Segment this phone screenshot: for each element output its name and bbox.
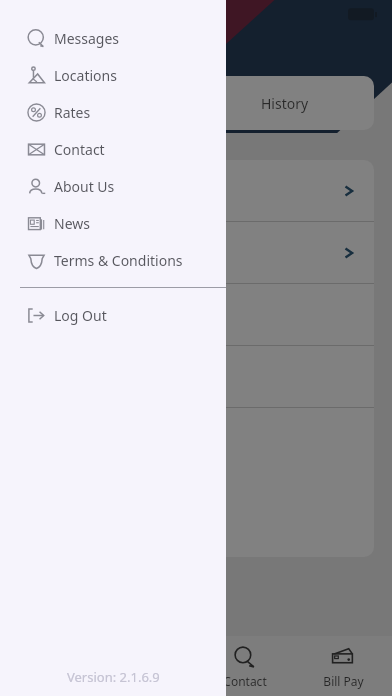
staticText: News — [54, 214, 90, 233]
staticText: History — [261, 94, 309, 113]
staticText: Locations — [54, 66, 117, 85]
staticText: Rates — [54, 103, 91, 122]
button[interactable]: Home — [0, 636, 98, 696]
staticText: About Us — [54, 177, 115, 196]
staticText: Bill Pay — [323, 673, 364, 689]
button[interactable]: Messages — [0, 20, 226, 57]
staticText: Log Out — [54, 306, 107, 325]
staticText: Scheduled — [73, 94, 142, 113]
button[interactable] — [18, 346, 374, 407]
button[interactable]: Contact — [196, 636, 294, 696]
button[interactable]: Contact — [0, 131, 226, 168]
button[interactable]: About Us — [0, 168, 226, 205]
button[interactable] — [18, 160, 374, 221]
button[interactable] — [18, 284, 374, 345]
button[interactable]: News — [0, 205, 226, 242]
button[interactable] — [18, 222, 374, 283]
staticText: Messages — [54, 29, 120, 48]
button[interactable]: Terms & Conditions — [0, 242, 226, 279]
button[interactable]: Bill Pay — [294, 636, 392, 696]
button[interactable]: Log Out — [0, 297, 226, 334]
button[interactable]: Accounts — [98, 636, 196, 696]
staticText: Accounts — [121, 673, 173, 689]
button[interactable]: Scheduled — [18, 76, 374, 130]
button[interactable]: Locations — [0, 57, 226, 94]
button[interactable]: Rates — [0, 94, 226, 131]
staticText: Version: 2.1.6.9 — [67, 668, 160, 686]
staticText: Contact — [223, 673, 267, 689]
staticText: Terms & Conditions — [54, 251, 183, 270]
staticText: Contact — [54, 140, 105, 159]
